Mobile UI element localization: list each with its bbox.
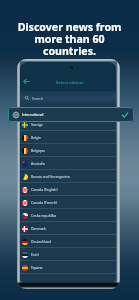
- staticText: Deutschland: [31, 239, 52, 244]
- staticText: Canada (French): [31, 200, 57, 205]
- staticText: Select edition: [56, 79, 84, 85]
- button[interactable]: Canada (French): [20, 196, 116, 209]
- staticText: Belgie: [31, 135, 41, 140]
- button[interactable]: Search: [20, 91, 116, 105]
- staticText: Belgique: [31, 148, 46, 153]
- button[interactable]: Belgie: [20, 131, 116, 144]
- staticText: Discover news from more than 60 countrie…: [0, 20, 139, 59]
- staticText: Eesti: [31, 252, 39, 257]
- button[interactable]: Canada (English): [20, 183, 116, 196]
- staticText: International: [22, 112, 44, 117]
- button[interactable]: Belgique: [20, 144, 116, 157]
- button[interactable]: Ceska republika: [20, 209, 116, 222]
- button[interactable]: International: [8, 107, 134, 122]
- button[interactable]: Deutschland: [20, 235, 116, 248]
- button[interactable]: Sverige: [20, 118, 116, 131]
- staticText: Canada (English): [31, 187, 58, 192]
- staticText: Ceska republika: [31, 213, 57, 218]
- button[interactable]: Bosnia and Herzegovina: [20, 170, 116, 183]
- staticText: Australia: [31, 161, 45, 166]
- button[interactable]: Eesti: [20, 248, 116, 261]
- button[interactable]: Australia: [20, 157, 116, 170]
- button[interactable]: Danmark: [20, 222, 116, 235]
- staticText: Bosnia and Herzegovina: [31, 174, 70, 179]
- staticText: Danmark: [31, 226, 46, 231]
- staticText: Espana: [31, 265, 43, 270]
- staticText: Search: [32, 96, 44, 101]
- button[interactable]: Espana: [20, 261, 116, 274]
- button[interactable]: Back: [22, 77, 31, 86]
- staticText: Sverige: [31, 122, 43, 127]
